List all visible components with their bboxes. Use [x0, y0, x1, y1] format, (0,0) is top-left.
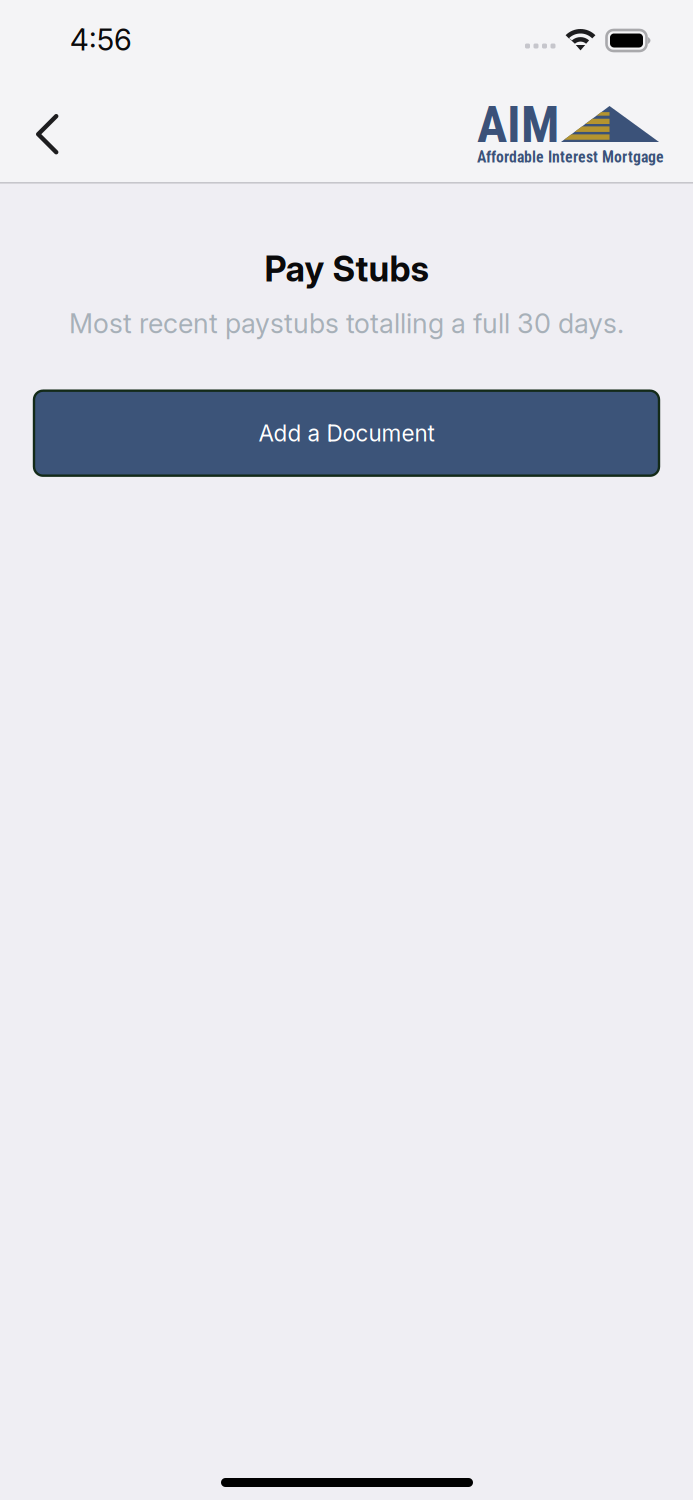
staticText: Affordable Interest Mortgage — [477, 148, 664, 166]
button[interactable]: Add a Document — [34, 391, 659, 476]
staticText: 4:56 — [70, 22, 132, 57]
staticText: Most recent paystubs totalling a full 30… — [69, 307, 624, 340]
staticText: Add a Document — [258, 419, 434, 447]
button[interactable]: Back — [0, 92, 88, 176]
staticText: Pay Stubs — [264, 248, 428, 290]
staticText: AIM — [477, 95, 559, 154]
